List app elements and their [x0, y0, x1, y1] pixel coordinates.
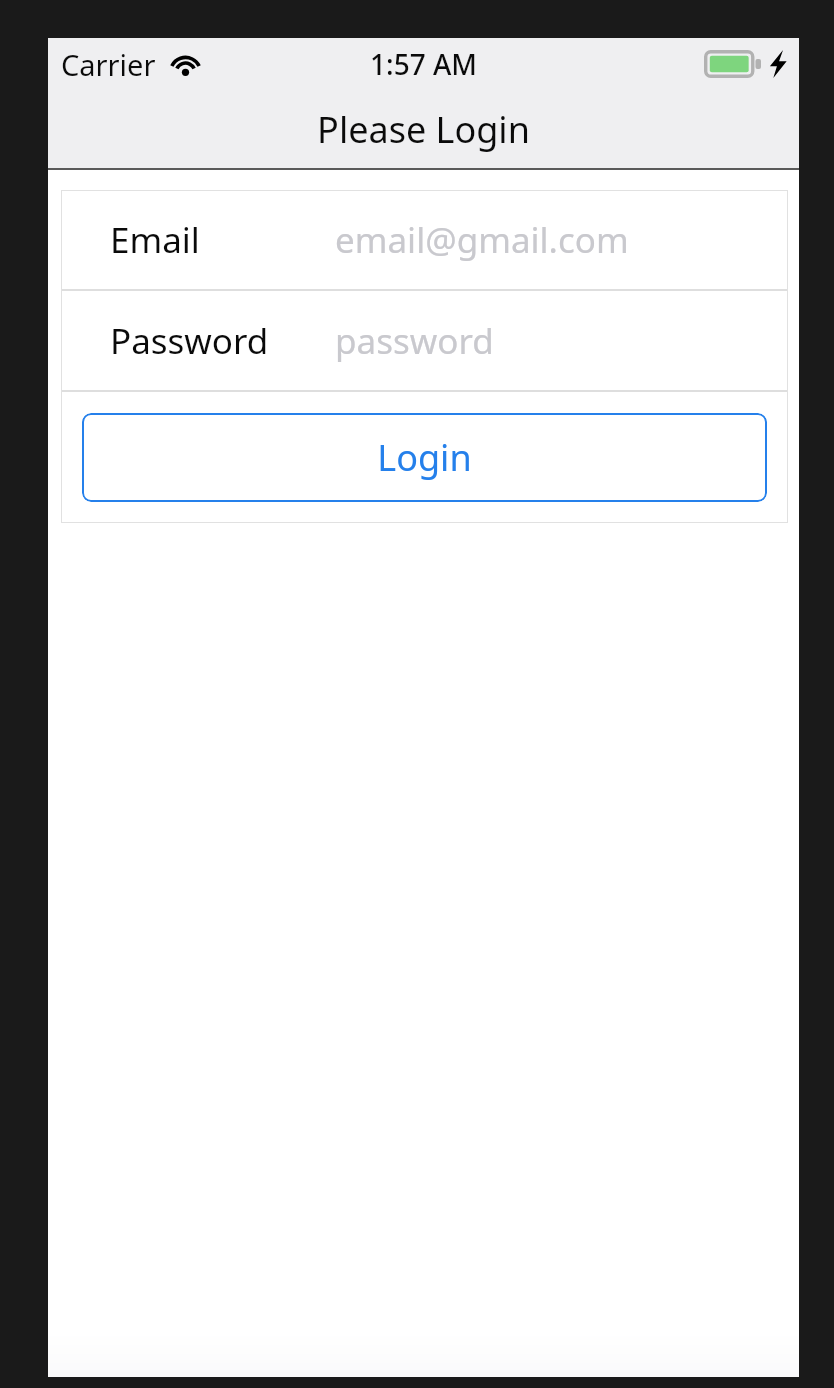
staticText: 1:57 AM [370, 45, 477, 83]
other: Battery charging [704, 50, 762, 78]
staticText: password [335, 317, 494, 365]
other: Wi-Fi signal [169, 52, 202, 76]
button[interactable]: Login [82, 413, 767, 502]
staticText: Email [110, 216, 200, 264]
staticText: Login [377, 433, 472, 482]
button[interactable]: Password [61, 291, 788, 390]
button[interactable]: Email [61, 190, 788, 289]
staticText: email@gmail.com [335, 216, 629, 264]
staticText: Password [110, 317, 269, 365]
staticText: Carrier [61, 45, 156, 84]
staticText: Please Login [317, 105, 530, 154]
